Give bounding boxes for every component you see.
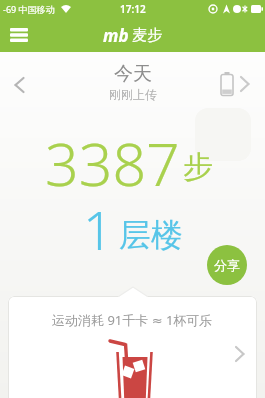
button[interactable] [4,68,34,102]
staticText: 层楼 [119,215,183,255]
staticText: 今天 [114,62,152,86]
button[interactable] [212,64,260,104]
button[interactable] [2,20,36,50]
button[interactable]: 分享 [207,245,247,285]
staticText: 3387 [45,123,180,203]
staticText: 麦步 [132,26,162,45]
button[interactable]: 运动消耗 91千卡 ≈ 1杯可乐 [8,296,257,398]
staticText: 17:12 [120,2,146,16]
staticText: mb [103,24,129,47]
staticText: 运动消耗 91千卡 ≈ 1杯可乐 [52,311,213,329]
staticText: 1 [83,193,114,265]
staticText: 刚刚上传 [109,87,157,102]
staticText: -69 中国移动 [3,3,55,15]
staticText: 步 [183,148,213,186]
staticText: 分享 [214,257,240,273]
